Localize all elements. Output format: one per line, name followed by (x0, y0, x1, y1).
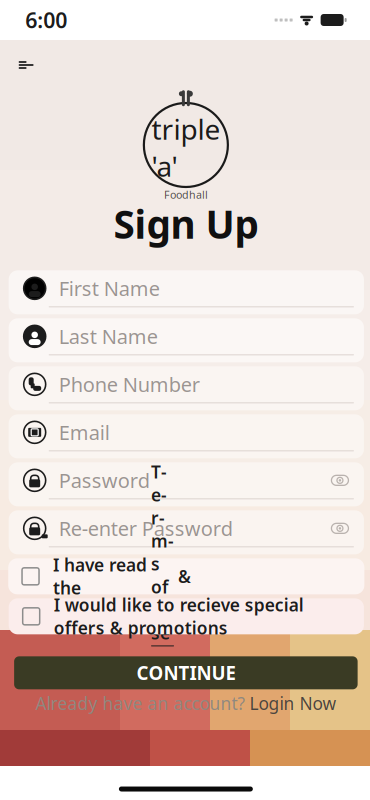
staticText: Email (59, 419, 110, 446)
staticText: I have read the (53, 553, 147, 599)
staticText: Terms of Use (151, 460, 174, 644)
staticText: I would like to recieve special offers &… (54, 593, 304, 639)
staticText: triple 'a' (151, 110, 220, 185)
staticText: Phone Number (59, 371, 200, 398)
staticText: CONTINUE (136, 660, 235, 685)
staticText: Already have an account? (35, 692, 245, 715)
button[interactable]: Re-enter Password (9, 510, 364, 554)
staticText: Login Now (249, 692, 336, 715)
staticText: First Name (59, 275, 160, 302)
button[interactable]: First Name (9, 270, 364, 314)
button[interactable]: Email (9, 414, 364, 458)
staticText: Foodhall (164, 188, 208, 202)
button[interactable]: Back (9, 48, 43, 82)
button[interactable]: I have read the (8, 558, 364, 594)
button[interactable]: Password (9, 462, 364, 506)
button[interactable]: Already have an account? (0, 691, 370, 715)
button[interactable]: Last Name (9, 318, 364, 362)
staticText: Re-enter Password (59, 515, 233, 542)
button[interactable]: Phone Number (9, 366, 364, 410)
staticText: Last Name (59, 323, 158, 350)
staticText: Password (59, 467, 150, 494)
button[interactable]: CONTINUE (14, 656, 358, 689)
staticText: 6:00 (25, 6, 67, 34)
button[interactable]: I would like to recieve special offers &… (9, 598, 364, 634)
staticText: & (178, 565, 191, 588)
staticText: Sign Up (113, 198, 258, 249)
